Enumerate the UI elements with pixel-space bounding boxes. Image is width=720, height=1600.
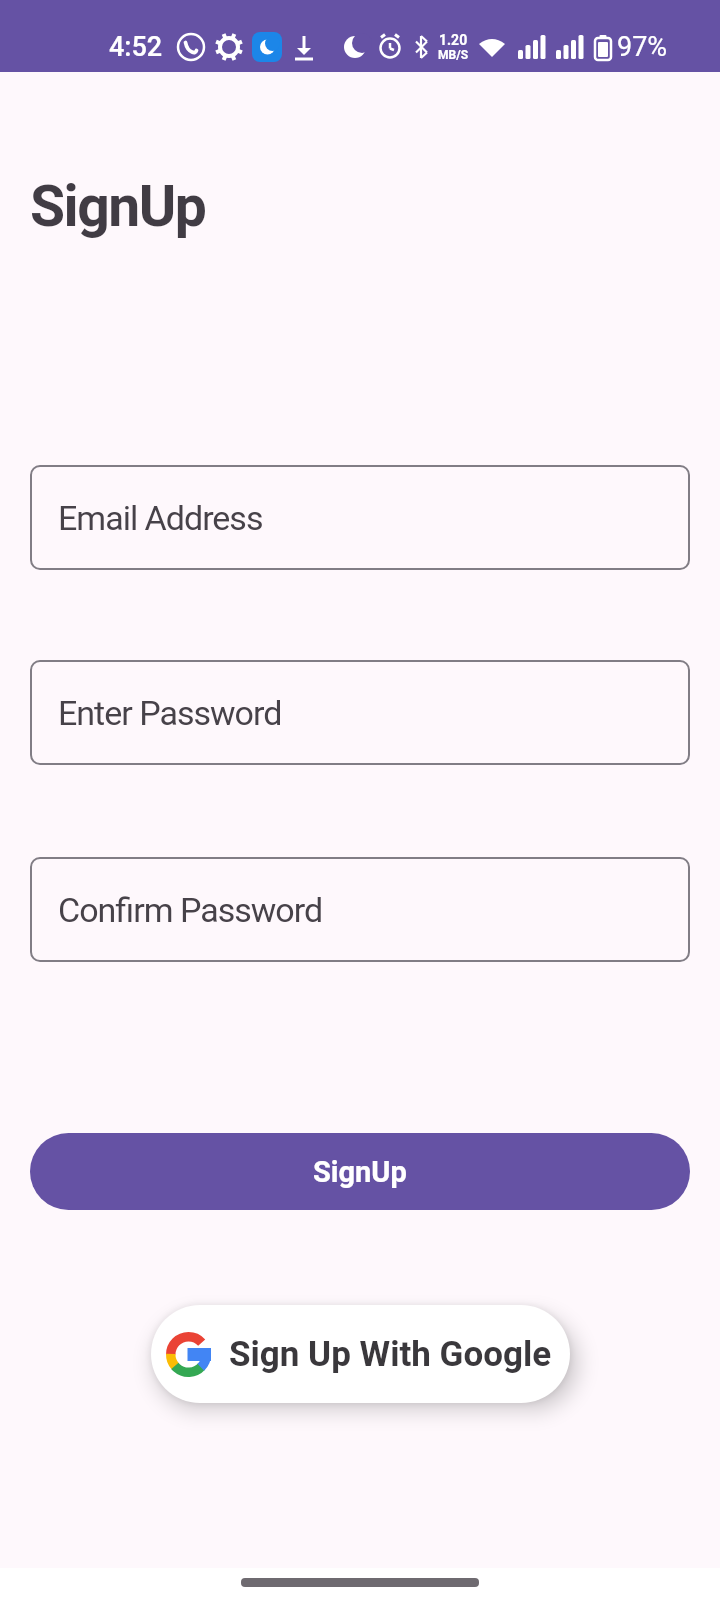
staticText: MB/S [438,48,469,62]
button[interactable]: Confirm Password [30,857,690,962]
staticText: SignUp [313,1155,407,1189]
button[interactable]: Enter Password [30,660,690,765]
button[interactable]: SignUp [30,1133,690,1210]
staticText: 97% [617,31,668,63]
staticText: SignUp [30,173,206,240]
staticText: Sign Up With Google [229,1334,552,1375]
staticText: Enter Password [58,693,282,733]
staticText: 1.20 [439,32,468,48]
staticText: Confirm Password [58,890,323,930]
button[interactable]: Email Address [30,465,690,570]
staticText: 4:52 [109,31,163,63]
button[interactable]: Sign Up With Google [151,1305,570,1403]
staticText: Email Address [58,498,263,538]
